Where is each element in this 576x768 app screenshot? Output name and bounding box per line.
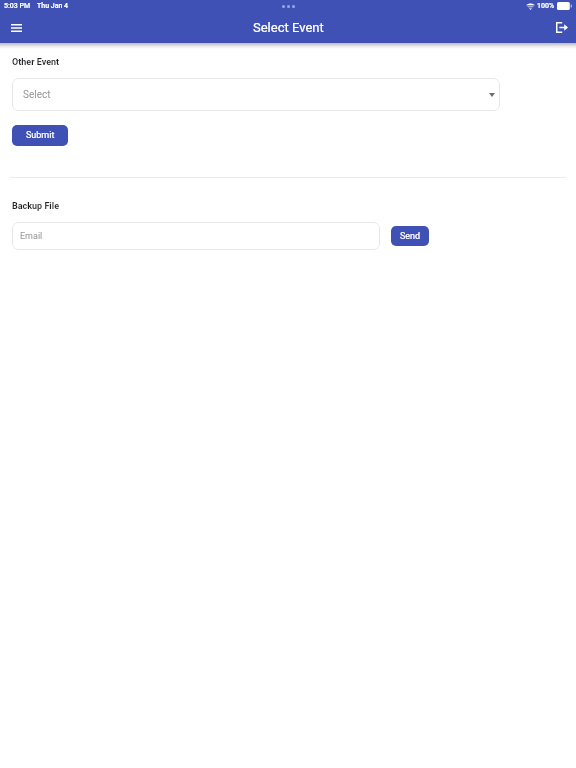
button[interactable]: Send bbox=[391, 226, 429, 246]
staticText: 100% bbox=[537, 2, 555, 10]
button[interactable]: Select bbox=[12, 78, 500, 111]
staticText: Email bbox=[20, 231, 43, 242]
button[interactable]: Submit bbox=[12, 125, 68, 146]
staticText: 5:03 PM bbox=[4, 2, 31, 10]
staticText: Thu Jan 4 bbox=[37, 2, 69, 10]
staticText: Select Event bbox=[253, 20, 324, 35]
button[interactable]: Open navigation menu bbox=[0, 12, 32, 43]
staticText: Submit bbox=[26, 130, 55, 141]
button[interactable]: Log out bbox=[548, 12, 576, 43]
staticText: Other Event bbox=[12, 57, 60, 68]
button[interactable]: Email bbox=[12, 222, 380, 250]
staticText: Backup File bbox=[12, 201, 59, 212]
staticText: Select bbox=[23, 89, 51, 101]
staticText: Send bbox=[400, 231, 421, 242]
